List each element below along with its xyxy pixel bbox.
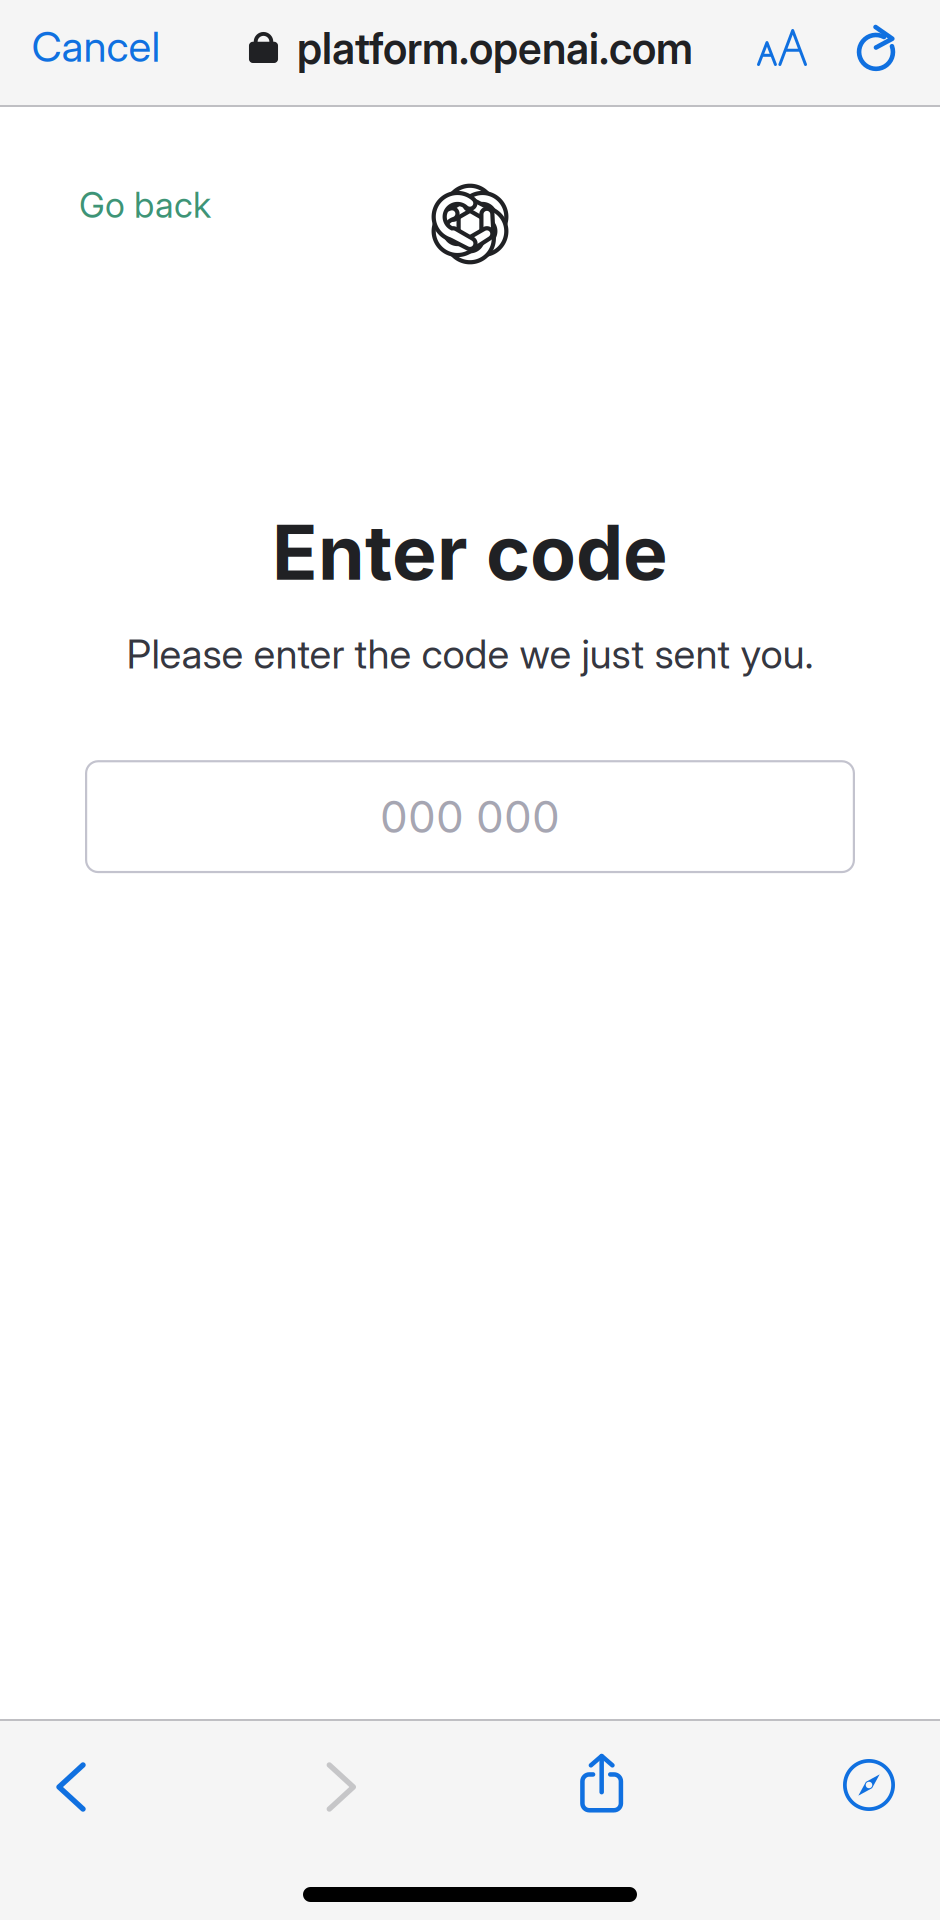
button[interactable]: Open in Safari (798, 1725, 938, 1829)
staticText: Cancel (31, 21, 160, 72)
button[interactable]: Share (533, 1725, 673, 1829)
staticText: Please enter the code we just sent you. (126, 630, 813, 678)
button[interactable]: Forward (267, 1725, 407, 1829)
staticText: Go back (79, 184, 211, 226)
staticText: Enter code (272, 507, 668, 598)
button[interactable]: Text size (749, 9, 841, 95)
button[interactable]: Back (2, 1725, 142, 1829)
staticText: 000 000 (380, 790, 560, 843)
staticText: platform.openai.com (297, 23, 693, 74)
button[interactable]: Go back (79, 177, 239, 233)
button[interactable]: Cancel (16, 9, 176, 95)
button[interactable]: Reload (841, 9, 927, 95)
